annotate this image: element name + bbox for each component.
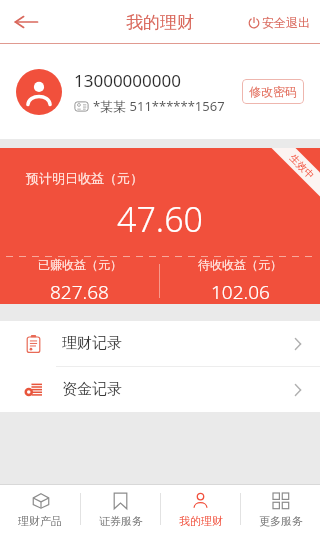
staticText: 47.60 — [0, 196, 320, 242]
staticText: 我的理财 — [126, 12, 194, 33]
staticText: *某某 511******1567 — [93, 97, 225, 115]
button[interactable]: 我的理财 — [161, 485, 240, 533]
staticText: 修改密码 — [249, 84, 297, 99]
staticText: 827.68 — [50, 279, 109, 304]
button[interactable]: 安全退出 — [246, 9, 312, 36]
button[interactable]: 资金记录 — [0, 367, 320, 412]
staticText: 证券服务 — [99, 514, 143, 528]
button[interactable]: 理财产品 — [0, 485, 80, 533]
button[interactable]: 理财记录 — [0, 321, 320, 366]
staticText: 已赚收益（元） — [38, 257, 122, 272]
staticText: 资金记录 — [62, 380, 294, 399]
staticText: 安全退出 — [262, 15, 310, 30]
staticText: 理财产品 — [18, 514, 62, 528]
staticText: 生效中 — [287, 151, 317, 182]
staticText: 待收收益（元） — [198, 257, 282, 272]
button[interactable]: 证券服务 — [81, 485, 160, 533]
staticText: 102.06 — [211, 279, 270, 304]
staticText: 预计明日收益（元） — [26, 170, 143, 186]
button[interactable]: 修改密码 — [242, 79, 304, 104]
staticText: 我的理财 — [179, 514, 223, 528]
staticText: 理财记录 — [62, 334, 294, 353]
button[interactable]: 更多服务 — [241, 485, 320, 533]
staticText: 更多服务 — [259, 514, 303, 528]
button[interactable]: Back — [6, 2, 46, 42]
staticText: 13000000000 — [74, 69, 181, 92]
